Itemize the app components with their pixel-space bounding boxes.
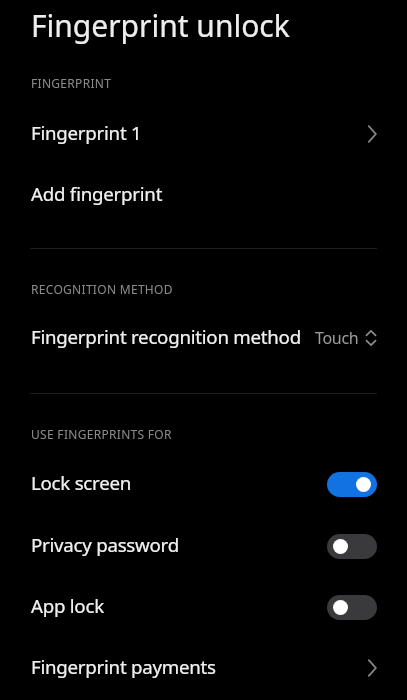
button[interactable]: App lock <box>0 579 407 635</box>
staticText: Fingerprint payments <box>31 654 216 679</box>
button[interactable] <box>327 472 377 497</box>
staticText: RECOGNITION METHOD <box>31 281 173 297</box>
button[interactable]: Fingerprint 1 <box>0 106 407 162</box>
button[interactable]: Fingerprint recognition method <box>0 310 407 366</box>
staticText: Fingerprint recognition method <box>31 324 301 349</box>
staticText: Touch <box>315 327 359 349</box>
button[interactable] <box>327 595 377 620</box>
staticText: FINGERPRINT <box>31 75 112 91</box>
button[interactable]: Add fingerprint <box>0 167 407 223</box>
button[interactable]: Privacy password <box>0 518 407 574</box>
staticText: Lock screen <box>31 470 132 495</box>
button[interactable] <box>327 534 377 559</box>
staticText: Fingerprint 1 <box>31 120 142 145</box>
staticText: USE FINGERPRINTS FOR <box>31 426 172 442</box>
staticText: Add fingerprint <box>31 181 163 206</box>
button[interactable]: Lock screen <box>0 456 407 512</box>
staticText: Privacy password <box>31 532 179 557</box>
button[interactable]: Fingerprint payments <box>0 640 407 696</box>
staticText: Fingerprint unlock <box>31 5 290 46</box>
staticText: App lock <box>31 593 104 618</box>
